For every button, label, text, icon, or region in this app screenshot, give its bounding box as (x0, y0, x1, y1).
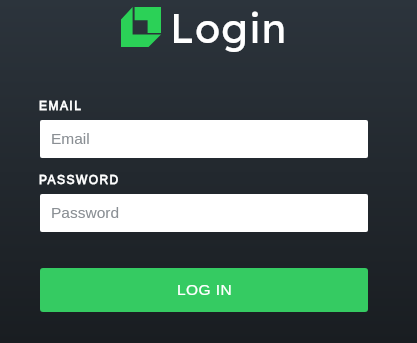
staticText: PASSWORD (39, 173, 120, 186)
staticText: Password (51, 204, 120, 221)
button[interactable]: LOG IN (40, 268, 368, 312)
staticText: Email (51, 130, 90, 147)
button[interactable]: Email (40, 120, 368, 158)
staticText: LOG IN (177, 281, 233, 298)
other: App logo (121, 7, 161, 47)
staticText: Login (170, 2, 288, 53)
staticText: EMAIL (39, 99, 83, 112)
button[interactable]: Password (40, 194, 368, 232)
